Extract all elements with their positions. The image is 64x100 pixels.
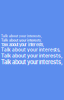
- staticText: Talk about your interests,: [1, 38, 42, 42]
- staticText: Talk about your interests,: [1, 34, 42, 38]
- staticText: Talk about your interests,: [1, 59, 63, 65]
- staticText: Talk about your interests,: [1, 42, 44, 47]
- staticText: Talk about your interests,: [1, 53, 63, 59]
- staticText: Talk about your interests,: [1, 47, 60, 53]
